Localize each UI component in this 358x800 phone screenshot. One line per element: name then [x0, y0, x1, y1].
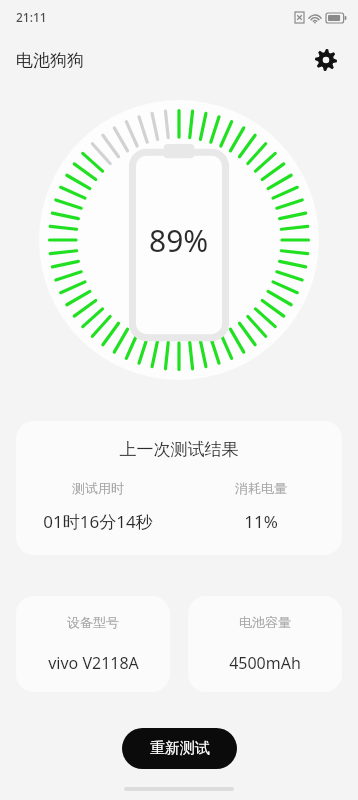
staticText: 21:11 — [16, 9, 47, 25]
staticText: vivo V2118A — [48, 652, 139, 674]
staticText: 01时16分14秒 — [43, 510, 153, 533]
staticText: 消耗电量 — [235, 480, 287, 496]
staticText: 重新测试 — [150, 739, 210, 758]
button[interactable]: 电池容量 — [188, 596, 342, 692]
staticText: 电池狗狗 — [16, 50, 84, 71]
button[interactable]: Settings — [308, 42, 344, 78]
button[interactable]: 设备型号 — [16, 596, 170, 692]
button[interactable]: 上一次测试结果 — [16, 421, 342, 555]
staticText: 89% — [149, 220, 209, 261]
staticText: 上一次测试结果 — [16, 439, 342, 460]
staticText: 测试用时 — [72, 480, 124, 496]
staticText: 4500mAh — [229, 652, 301, 674]
staticText: 设备型号 — [67, 614, 119, 630]
staticText: 11% — [244, 510, 278, 533]
staticText: 电池容量 — [239, 614, 291, 630]
button[interactable]: 重新测试 — [122, 728, 237, 769]
